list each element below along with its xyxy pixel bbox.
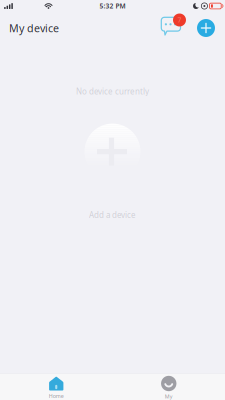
button[interactable]: Messages [160,13,186,36]
staticText: No device currently [76,86,149,97]
staticText: My [165,393,173,400]
staticText: Add a device [89,210,136,220]
button[interactable]: Home [0,371,112,400]
button[interactable]: My [112,371,225,400]
staticText: My device [9,21,59,35]
button[interactable]: Add device [194,16,218,40]
staticText: 5:32 PM [99,2,125,10]
button[interactable]: Add a device [82,122,142,182]
staticText: 7 [177,16,181,24]
staticText: Home [49,392,64,399]
